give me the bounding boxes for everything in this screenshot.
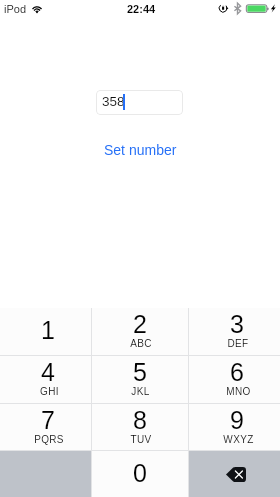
staticText: 22:44 bbox=[127, 3, 156, 15]
staticText: WXYZ bbox=[223, 434, 254, 445]
staticText: PQRS bbox=[34, 434, 64, 445]
staticText: GHI bbox=[40, 386, 59, 397]
staticText: MNO bbox=[226, 386, 251, 397]
staticText: JKL bbox=[131, 386, 150, 397]
button[interactable]: 8 bbox=[92, 404, 189, 451]
button[interactable]: 7 bbox=[0, 404, 92, 451]
button[interactable]: 6 bbox=[189, 356, 280, 404]
button[interactable] bbox=[0, 451, 92, 497]
staticText: TUV bbox=[130, 434, 152, 445]
staticText: 4 bbox=[41, 358, 55, 386]
staticText: 7 bbox=[41, 406, 55, 434]
staticText: DEF bbox=[227, 338, 249, 349]
staticText: 9 bbox=[230, 406, 244, 434]
staticText: 8 bbox=[133, 406, 147, 434]
staticText: 1 bbox=[41, 316, 55, 344]
staticText: 2 bbox=[133, 310, 147, 338]
button[interactable]: 1 bbox=[0, 308, 92, 356]
staticText: 3 bbox=[230, 310, 244, 338]
button[interactable]: 9 bbox=[189, 404, 280, 451]
button[interactable]: 2 bbox=[92, 308, 189, 356]
button[interactable]: Set number bbox=[0, 141, 280, 159]
staticText: 5 bbox=[133, 358, 147, 386]
staticText: iPod bbox=[4, 3, 27, 15]
button[interactable]: 358 bbox=[96, 90, 183, 115]
button[interactable]: 0 bbox=[92, 451, 189, 497]
button[interactable]: 5 bbox=[92, 356, 189, 404]
staticText: ABC bbox=[130, 338, 152, 349]
button[interactable]: Delete bbox=[189, 451, 280, 497]
button[interactable]: 3 bbox=[189, 308, 280, 356]
staticText: 0 bbox=[133, 459, 147, 487]
staticText: 358 bbox=[102, 94, 125, 109]
button[interactable]: 4 bbox=[0, 356, 92, 404]
staticText: Set number bbox=[104, 142, 177, 158]
staticText: 6 bbox=[230, 358, 244, 386]
